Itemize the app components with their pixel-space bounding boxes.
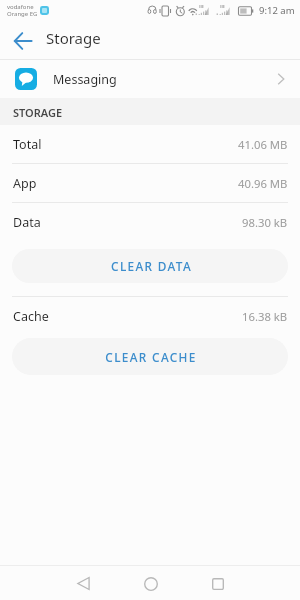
staticText: Orange EG	[7, 10, 38, 18]
button[interactable]: Home	[134, 567, 167, 600]
staticText: CLEAR DATA	[111, 258, 192, 274]
staticText: 16.38 kB	[242, 309, 288, 324]
staticText: vodafone	[7, 3, 34, 11]
staticText: 98.30 kB	[242, 215, 288, 230]
button[interactable]: Recent apps	[201, 567, 234, 600]
staticText: 9:12 am	[259, 4, 295, 17]
staticText: Total	[13, 136, 42, 153]
button[interactable]: App	[0, 164, 300, 203]
staticText: Messaging	[53, 71, 117, 88]
button[interactable]: Data	[0, 203, 300, 242]
staticText: CLEAR CACHE	[105, 349, 197, 365]
button[interactable]: Cache	[0, 297, 300, 336]
button[interactable]: Total	[0, 125, 300, 164]
staticText: 41.06 MB	[238, 137, 288, 152]
staticText: Storage	[46, 28, 101, 48]
button[interactable]: CLEAR DATA	[12, 249, 288, 283]
staticText: App	[13, 175, 37, 192]
staticText: STORAGE	[13, 105, 63, 120]
button[interactable]: Messaging	[0, 60, 300, 98]
staticText: Data	[13, 214, 41, 231]
staticText: 40.96 MB	[238, 176, 288, 191]
button[interactable]: Back	[5, 23, 41, 59]
button[interactable]: CLEAR CACHE	[12, 338, 288, 375]
button[interactable]: Back	[67, 567, 100, 600]
staticText: Cache	[13, 308, 49, 325]
